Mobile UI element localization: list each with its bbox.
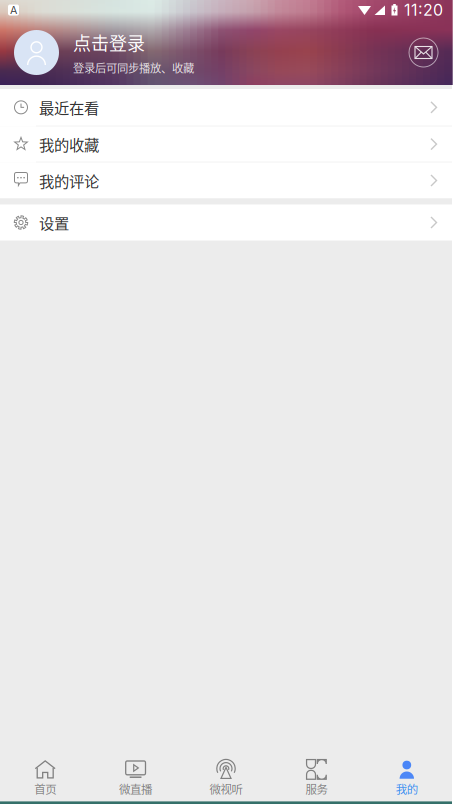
button[interactable]: 服务 [271,758,362,804]
staticText: 我的收藏 [39,133,99,155]
staticText: 我的评论 [39,169,99,192]
staticText: 微视听 [209,780,242,797]
button[interactable]: 最近在看 [0,89,452,126]
button[interactable]: 我的评论 [0,162,452,198]
staticText: 设置 [39,211,69,234]
staticText: A [10,3,17,16]
button[interactable]: Messages [409,38,438,67]
staticText: 点击登录 [73,29,145,55]
staticText: 登录后可同步播放、收藏 [73,59,194,76]
button[interactable]: 首页 [0,758,90,804]
button[interactable]: Avatar [14,30,59,75]
staticText: 微直播 [119,780,152,797]
button[interactable]: 我的收藏 [0,126,452,162]
staticText: 服务 [305,780,327,797]
staticText: 我的 [396,780,418,797]
staticText: 首页 [34,780,56,797]
staticText: 最近在看 [39,96,99,118]
button[interactable]: 我的 [362,758,452,804]
button[interactable]: 设置 [0,204,452,240]
staticText: 11:20 [404,0,443,20]
button[interactable]: 微直播 [90,758,181,804]
button[interactable]: 微视听 [181,758,271,804]
